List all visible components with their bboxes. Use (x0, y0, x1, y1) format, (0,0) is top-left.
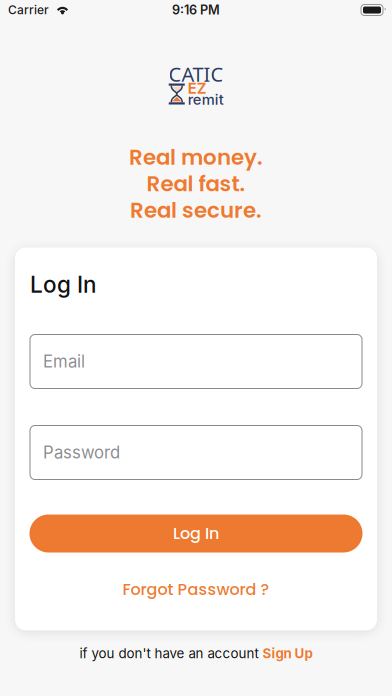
button[interactable]: Forgot Password ? (30, 579, 362, 599)
staticText: remit (188, 91, 224, 108)
button[interactable]: Email (30, 334, 362, 388)
button[interactable]: Password (30, 425, 362, 479)
button[interactable]: Log In (29, 514, 362, 552)
staticText: 9:16 PM (172, 2, 220, 18)
button[interactable]: Sign Up (262, 644, 312, 662)
staticText: Carrier (8, 3, 49, 17)
staticText: Log In (30, 271, 96, 298)
staticText: Real money. (129, 142, 263, 172)
staticText: Log In (173, 522, 219, 545)
staticText: Sign Up (262, 645, 312, 661)
staticText: Email (43, 351, 85, 372)
staticText: Password (43, 442, 120, 463)
staticText: Real fast. (146, 169, 245, 199)
staticText: EZ (188, 80, 207, 97)
staticText: Real secure. (130, 195, 262, 225)
staticText: CATIC (168, 60, 223, 88)
staticText: if you don't have an account (79, 645, 258, 661)
staticText: Forgot Password ? (122, 578, 269, 601)
